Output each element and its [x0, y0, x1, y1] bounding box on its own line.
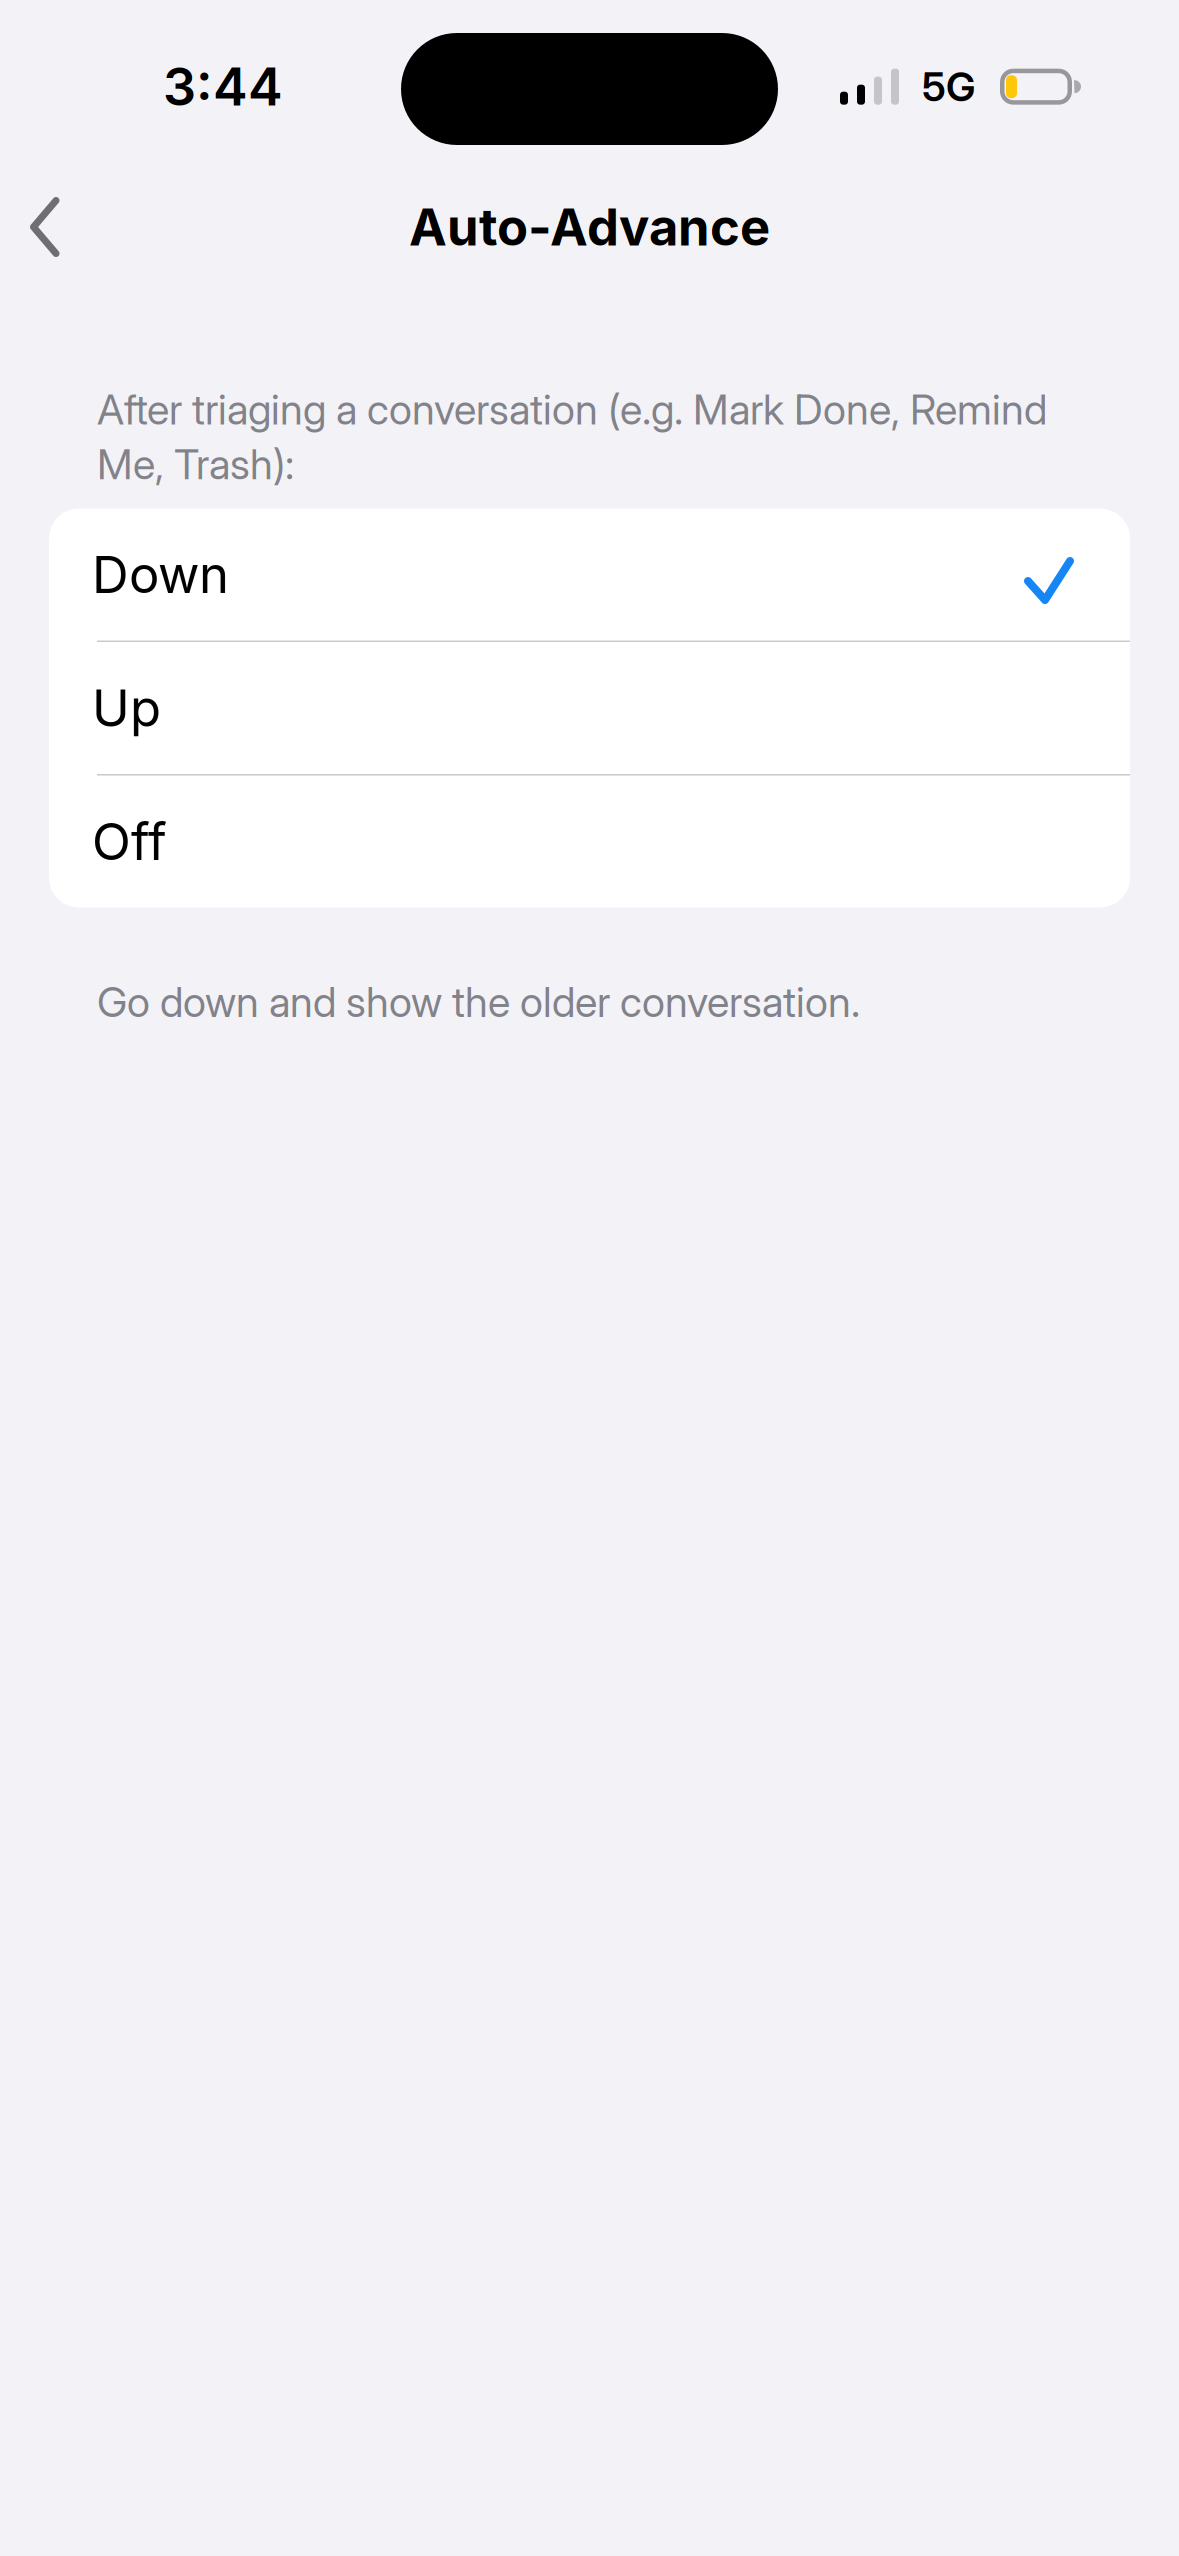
staticText: After triaging a conversation (e.g. Mark… — [97, 385, 1047, 434]
staticText: 5G — [922, 63, 975, 110]
button[interactable]: Back — [0, 197, 60, 257]
button[interactable]: Off — [49, 775, 1130, 907]
staticText: Go down and show the older conversation. — [97, 977, 860, 1026]
staticText: Auto-Advance — [409, 197, 770, 257]
button[interactable]: Down — [49, 508, 1130, 640]
staticText: Down — [92, 545, 229, 604]
button[interactable]: Up — [49, 642, 1130, 774]
staticText: Off — [92, 812, 167, 871]
staticText: 3:44 — [163, 56, 283, 117]
staticText: Up — [92, 678, 161, 738]
staticText: Me, Trash): — [97, 440, 294, 489]
